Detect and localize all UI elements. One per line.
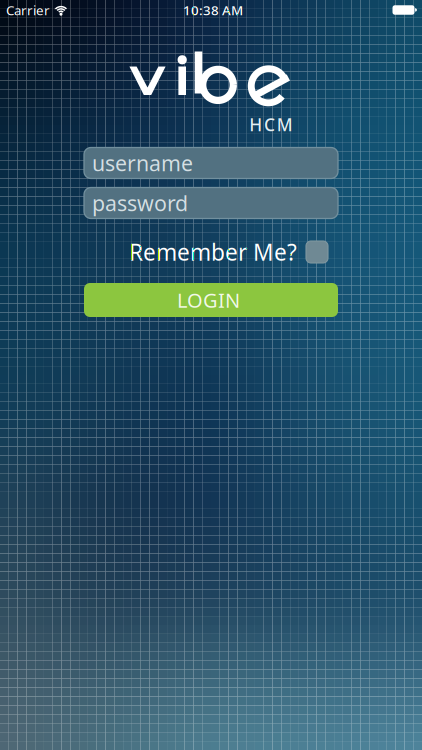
staticText: 10:38 AM	[183, 1, 243, 19]
staticText: HCM	[249, 113, 293, 136]
button[interactable]: Remember Me?	[88, 239, 328, 265]
button[interactable]: LOGIN	[84, 283, 338, 317]
staticText: Carrier	[6, 1, 50, 19]
staticText: username	[92, 149, 193, 177]
button[interactable]: username	[84, 147, 338, 178]
staticText: Remember Me?	[129, 237, 297, 267]
staticText: LOGIN	[177, 287, 240, 313]
button[interactable]: password	[84, 187, 338, 218]
staticText: password	[92, 189, 188, 217]
